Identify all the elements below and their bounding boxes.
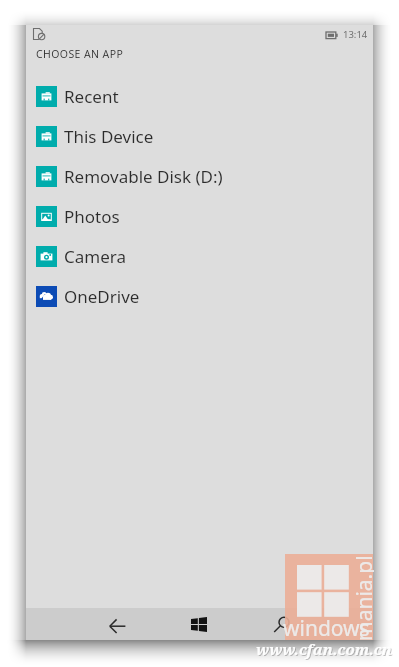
- staticText: mania.pl: [350, 555, 374, 641]
- button[interactable]: Camera: [26, 236, 373, 276]
- button[interactable]: Back: [92, 610, 142, 642]
- staticText: CHOOSE AN APP: [36, 47, 124, 61]
- staticText: Removable Disk (D:): [64, 165, 223, 188]
- staticText: 13:14: [343, 28, 368, 41]
- staticText: OneDrive: [64, 285, 140, 308]
- button[interactable]: Photos: [26, 196, 373, 236]
- staticText: This Device: [64, 125, 154, 148]
- button[interactable]: This Device: [26, 116, 373, 156]
- staticText: windows: [283, 614, 370, 643]
- button[interactable]: Start: [179, 609, 219, 639]
- button[interactable]: Removable Disk (D:): [26, 156, 373, 196]
- button[interactable]: Recent: [26, 76, 373, 116]
- button[interactable]: Search: [256, 609, 306, 641]
- staticText: www.cfan.com.cn: [256, 639, 392, 659]
- button[interactable]: OneDrive: [26, 276, 373, 316]
- staticText: www.cfan.com.cn: [257, 640, 393, 660]
- staticText: Recent: [64, 85, 119, 108]
- staticText: Camera: [64, 245, 126, 268]
- staticText: Photos: [64, 205, 120, 228]
